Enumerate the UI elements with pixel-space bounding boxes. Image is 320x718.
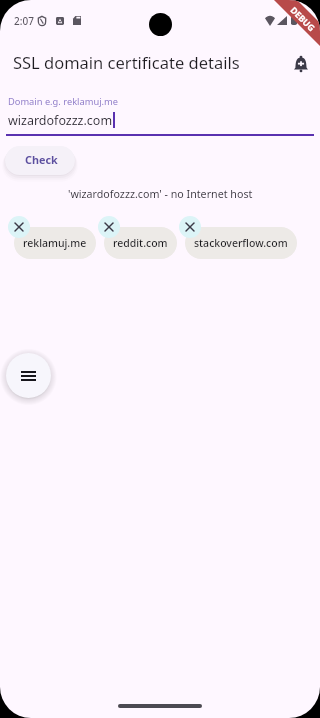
- staticText: DEBUG: [288, 4, 317, 34]
- staticText: wizardofozzz.com: [8, 112, 113, 129]
- button[interactable]: Remove stackoverflow.com: [179, 216, 201, 238]
- staticText: Domain e.g. reklamuj.me: [8, 95, 118, 108]
- button[interactable]: stackoverflow.com: [185, 227, 297, 259]
- staticText: 'wizardofozzz.com' - no Internet host: [68, 187, 253, 202]
- button[interactable]: reklamuj.me: [14, 227, 96, 259]
- staticText: 2:07: [14, 14, 34, 28]
- button[interactable]: Remove reddit.com: [98, 216, 120, 238]
- staticText: reddit.com: [113, 236, 168, 250]
- button[interactable]: Open menu: [6, 353, 51, 398]
- staticText: SSL domain certificate details: [13, 51, 240, 73]
- staticText: stackoverflow.com: [194, 236, 288, 250]
- staticText: reklamuj.me: [23, 236, 87, 250]
- button[interactable]: Remove reklamuj.me: [8, 216, 30, 238]
- button[interactable]: reddit.com: [104, 227, 177, 259]
- button[interactable]: Check: [5, 146, 75, 175]
- staticText: Check: [25, 152, 58, 167]
- button[interactable]: Add notification: [290, 53, 312, 75]
